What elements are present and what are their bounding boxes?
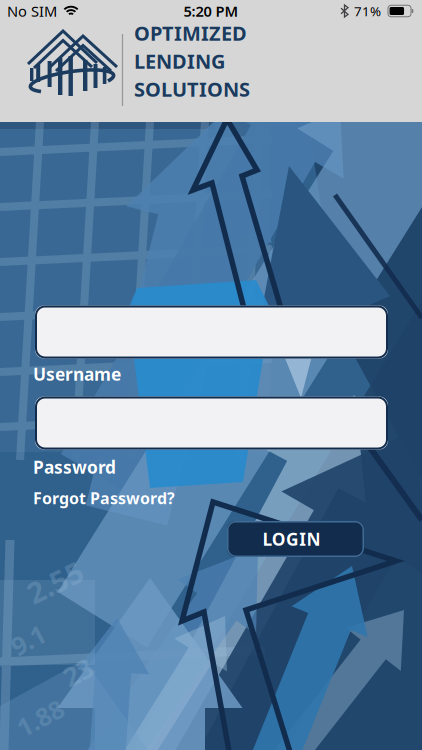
staticText: 23 [63,654,93,690]
button[interactable]: LOGIN [227,521,364,557]
button[interactable]: Username [35,305,388,358]
staticText: 5:20 PM [183,1,238,21]
staticText: OPTIMIZED [134,20,247,46]
staticText: LOGIN [262,527,321,550]
staticText: 1.88 [15,701,64,735]
staticText: Username [33,362,121,385]
staticText: Forgot Password? [33,487,175,509]
staticText: Password [33,455,116,478]
staticText: 9.1 [10,623,45,657]
staticText: SOLUTIONS [134,76,250,102]
staticText: LENDING [134,48,225,74]
button[interactable]: Password [35,396,388,449]
staticText: No SIM [7,1,57,21]
staticText: 71% [354,2,381,20]
button[interactable]: Forgot Password? [33,487,175,509]
staticText: 2.55 [25,562,84,601]
